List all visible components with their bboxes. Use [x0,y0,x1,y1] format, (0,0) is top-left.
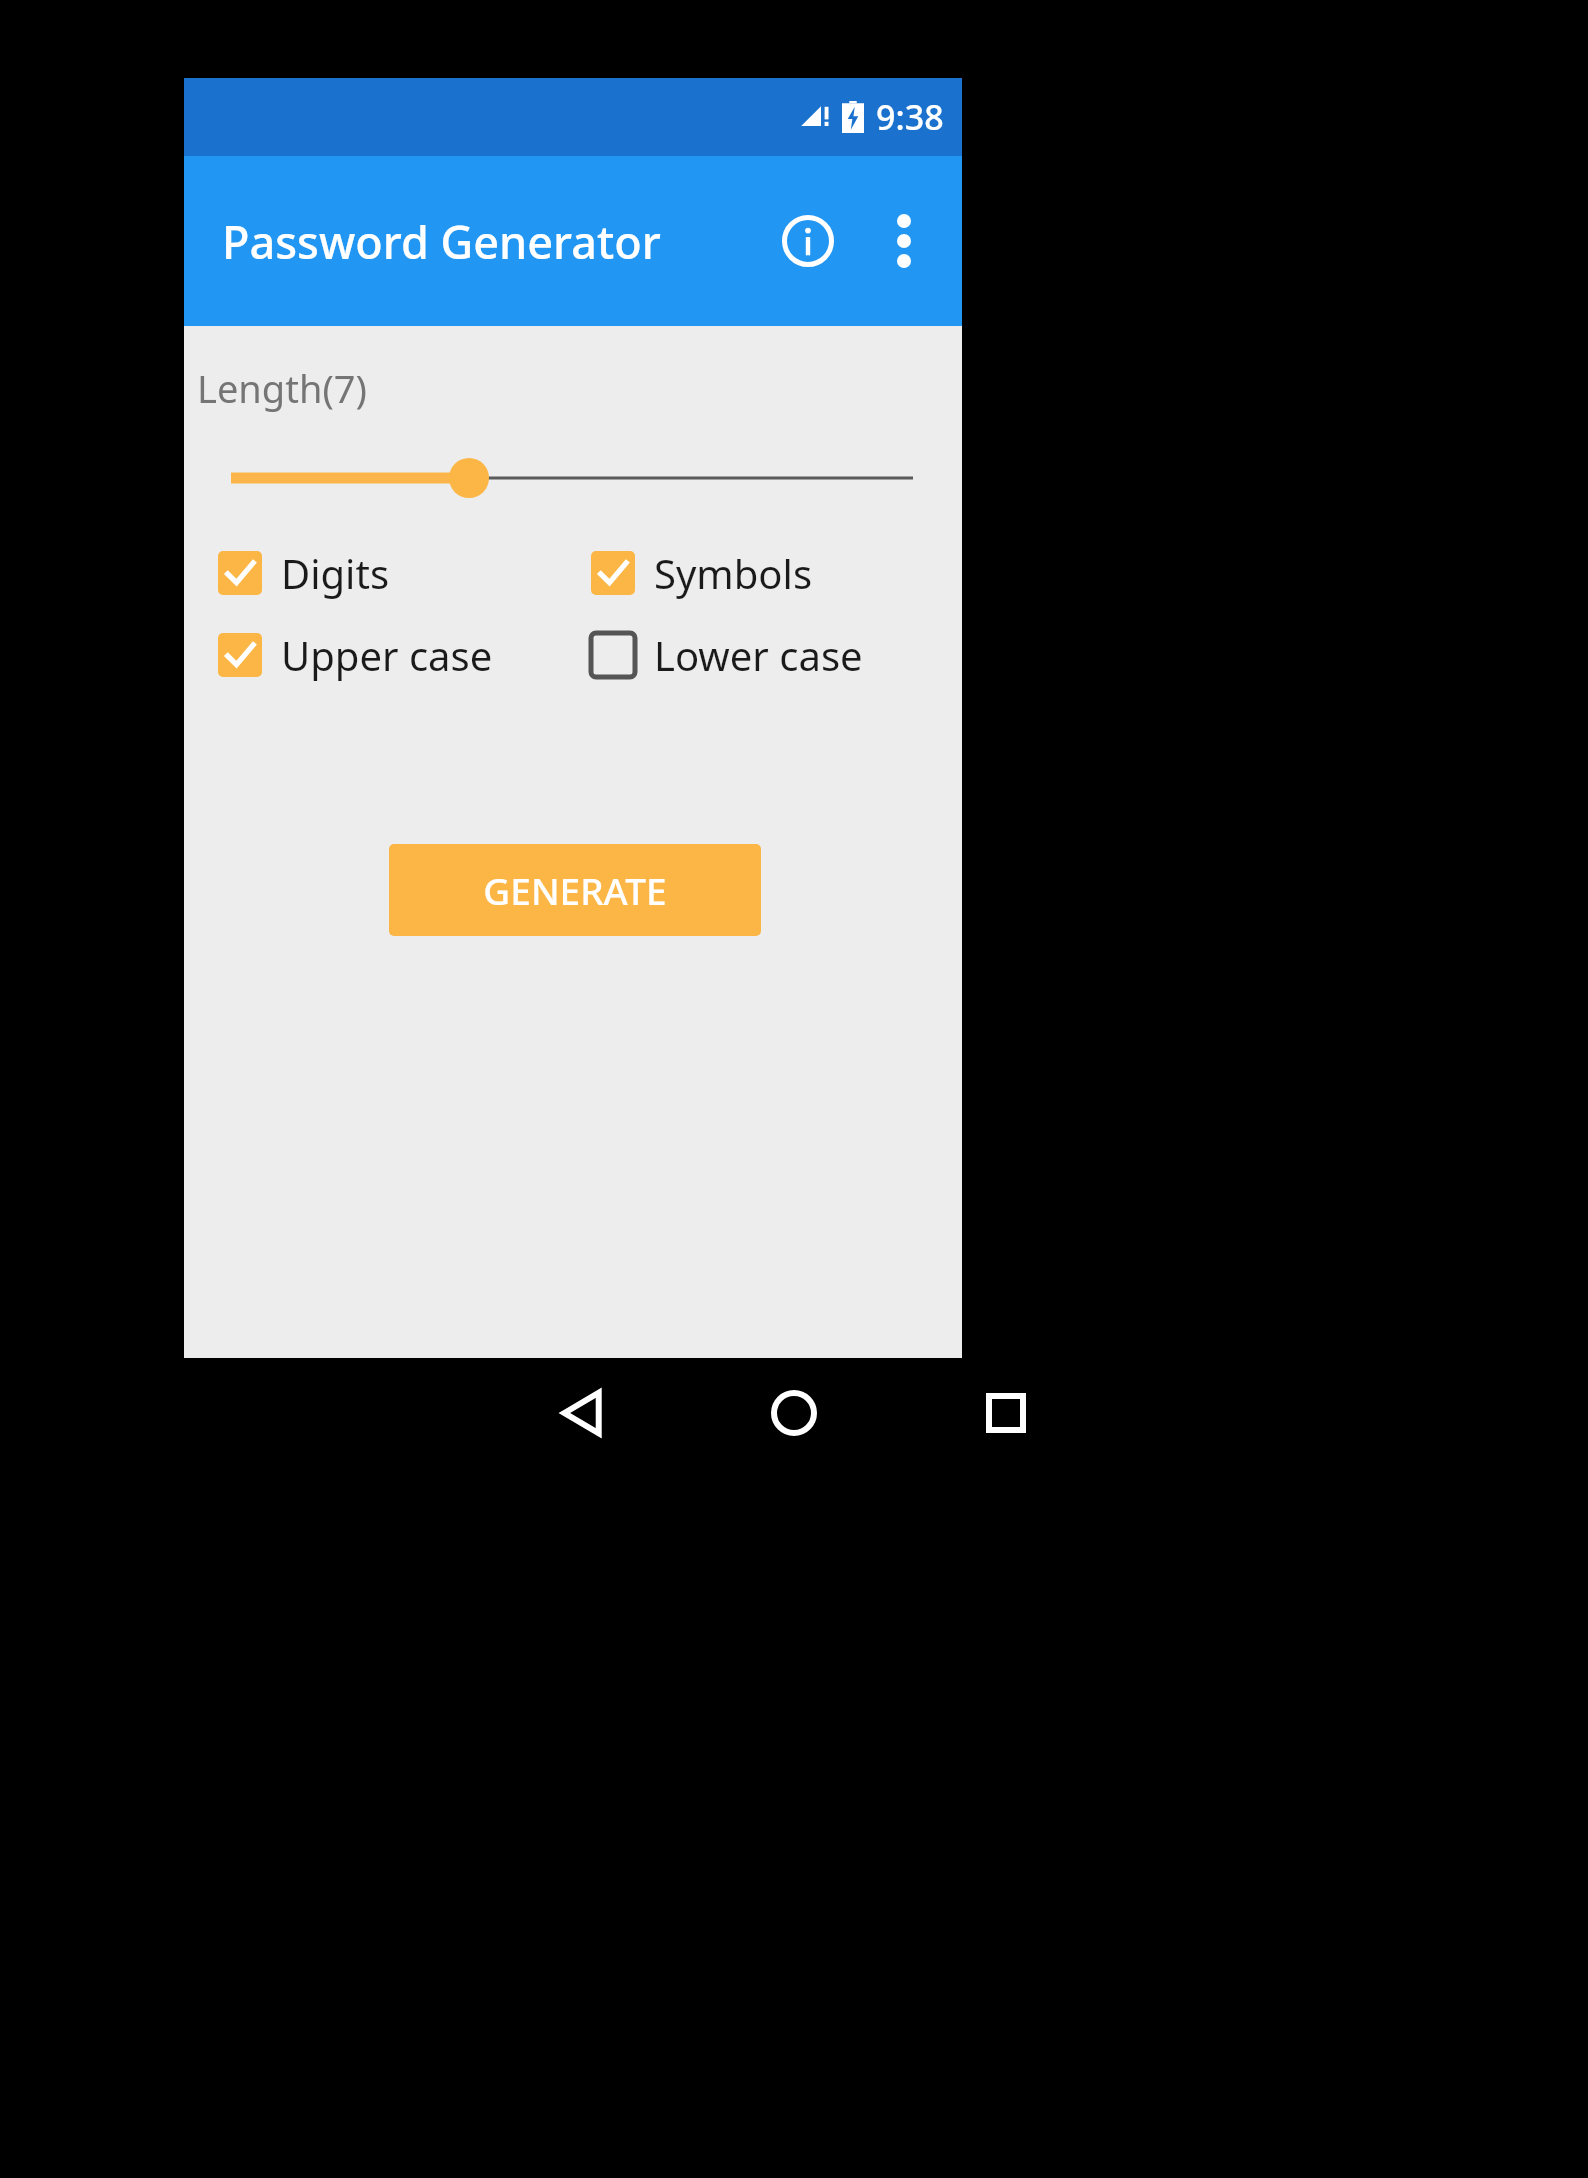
button[interactable]: Home [734,1358,854,1468]
staticText: Length(7) [197,362,367,414]
staticText: Upper case [281,628,493,682]
button[interactable]: Recent apps [946,1358,1066,1468]
button[interactable]: GENERATE [389,844,761,936]
button[interactable]: More options [856,193,952,289]
staticText: Password Generator [222,211,661,272]
button[interactable]: Info [760,193,856,289]
button[interactable]: Upper case [215,628,493,682]
staticText: Symbols [654,546,813,600]
staticText: GENERATE [483,865,667,915]
button[interactable]: Password length slider [184,446,962,510]
staticText: 9:38 [876,94,944,140]
staticText: Lower case [654,628,863,682]
button[interactable]: Lower case [588,628,863,682]
staticText: Digits [281,546,390,600]
button[interactable]: Digits [215,546,390,600]
button[interactable]: Back [522,1358,642,1468]
button[interactable]: Symbols [588,546,813,600]
